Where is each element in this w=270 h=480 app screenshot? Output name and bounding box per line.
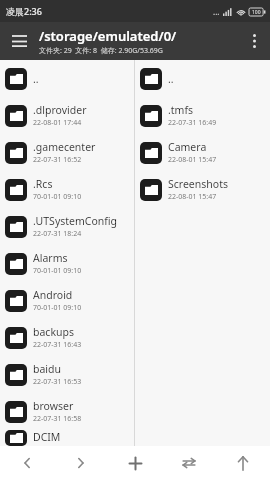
staticText: 22-07-31 16:43 bbox=[33, 340, 82, 350]
button[interactable]: .UTSystemConfig bbox=[0, 208, 134, 245]
button[interactable]: Forward bbox=[54, 446, 108, 480]
staticText: 22-08-01 15:47 bbox=[168, 155, 217, 165]
staticText: ... bbox=[213, 6, 220, 17]
button[interactable]: backups bbox=[0, 319, 134, 356]
button[interactable]: .Rcs bbox=[0, 171, 134, 208]
staticText: 70-01-01 09:10 bbox=[33, 192, 82, 202]
button[interactable]: baidu bbox=[0, 356, 134, 393]
button[interactable]: More options bbox=[238, 22, 270, 60]
button[interactable]: .tmfs bbox=[135, 97, 270, 134]
staticText: 100 bbox=[252, 9, 261, 16]
staticText: Alarms bbox=[33, 251, 68, 265]
staticText: DCIM bbox=[33, 430, 61, 444]
button[interactable]: Up bbox=[216, 446, 270, 480]
staticText: .. bbox=[33, 72, 39, 86]
staticText: 22-07-31 18:24 bbox=[33, 229, 82, 239]
staticText: .Rcs bbox=[33, 177, 53, 191]
staticText: 凌晨2:36 bbox=[6, 5, 42, 17]
button[interactable]: .gamecenter bbox=[0, 134, 134, 171]
staticText: 22-08-01 15:47 bbox=[168, 192, 217, 202]
staticText: 22-07-31 16:53 bbox=[33, 377, 82, 387]
staticText: baidu bbox=[33, 362, 62, 376]
button[interactable]: Alarms bbox=[0, 245, 134, 282]
staticText: 22-07-31 16:52 bbox=[33, 155, 82, 165]
staticText: 22-07-31 16:58 bbox=[33, 414, 82, 424]
button[interactable]: New bbox=[108, 446, 162, 480]
staticText: 22-07-31 16:49 bbox=[168, 118, 217, 128]
staticText: .gamecenter bbox=[33, 140, 96, 154]
staticText: Screenshots bbox=[168, 177, 228, 191]
button[interactable]: Android bbox=[0, 282, 134, 319]
staticText: 文件夹: 29 文件: 8 储存: 2.90G/53.69G bbox=[39, 46, 163, 56]
staticText: /storage/emulated/0/ bbox=[39, 27, 177, 45]
staticText: Android bbox=[33, 288, 73, 302]
button[interactable]: Screenshots bbox=[135, 171, 270, 208]
button[interactable]: Transfer bbox=[162, 446, 216, 480]
button[interactable]: DCIM bbox=[0, 430, 134, 446]
staticText: 70-01-01 09:10 bbox=[33, 266, 82, 276]
button[interactable]: Open navigation menu bbox=[0, 22, 38, 60]
button[interactable]: .dlprovider bbox=[0, 97, 134, 134]
button[interactable]: browser bbox=[0, 393, 134, 430]
staticText: Camera bbox=[168, 140, 207, 154]
staticText: .UTSystemConfig bbox=[33, 214, 118, 228]
button[interactable]: Camera bbox=[135, 134, 270, 171]
button[interactable]: .. bbox=[0, 60, 134, 97]
staticText: 22-08-01 17:44 bbox=[33, 118, 82, 128]
button[interactable]: .. bbox=[135, 60, 270, 97]
staticText: backups bbox=[33, 325, 74, 339]
staticText: browser bbox=[33, 399, 74, 413]
staticText: .tmfs bbox=[168, 103, 194, 117]
staticText: .dlprovider bbox=[33, 103, 87, 117]
button[interactable]: Back bbox=[0, 446, 54, 480]
staticText: 70-01-01 09:10 bbox=[33, 303, 82, 313]
staticText: .. bbox=[168, 72, 174, 86]
